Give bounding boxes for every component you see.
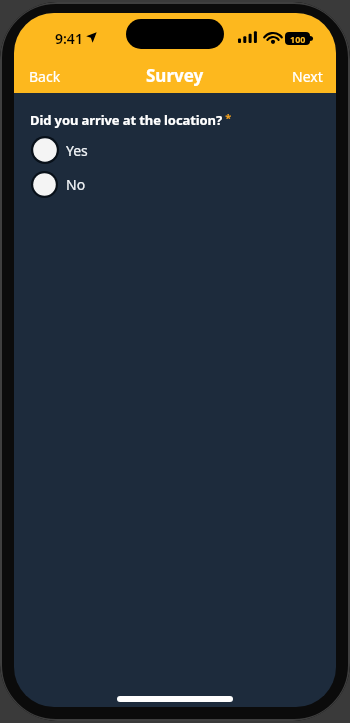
staticText: Back	[29, 67, 61, 83]
button[interactable]: Next	[286, 61, 329, 89]
staticText: Survey	[146, 64, 204, 87]
staticText: Yes	[66, 141, 88, 160]
staticText: No	[66, 175, 86, 194]
button[interactable]: No	[27, 171, 86, 198]
button[interactable]: Yes	[27, 136, 88, 164]
button[interactable]: Back	[23, 61, 67, 89]
staticText: 100	[290, 33, 306, 45]
staticText: 9:41	[55, 29, 83, 48]
staticText: Next	[292, 67, 323, 83]
staticText: Did you arrive at the location? *	[30, 110, 232, 129]
